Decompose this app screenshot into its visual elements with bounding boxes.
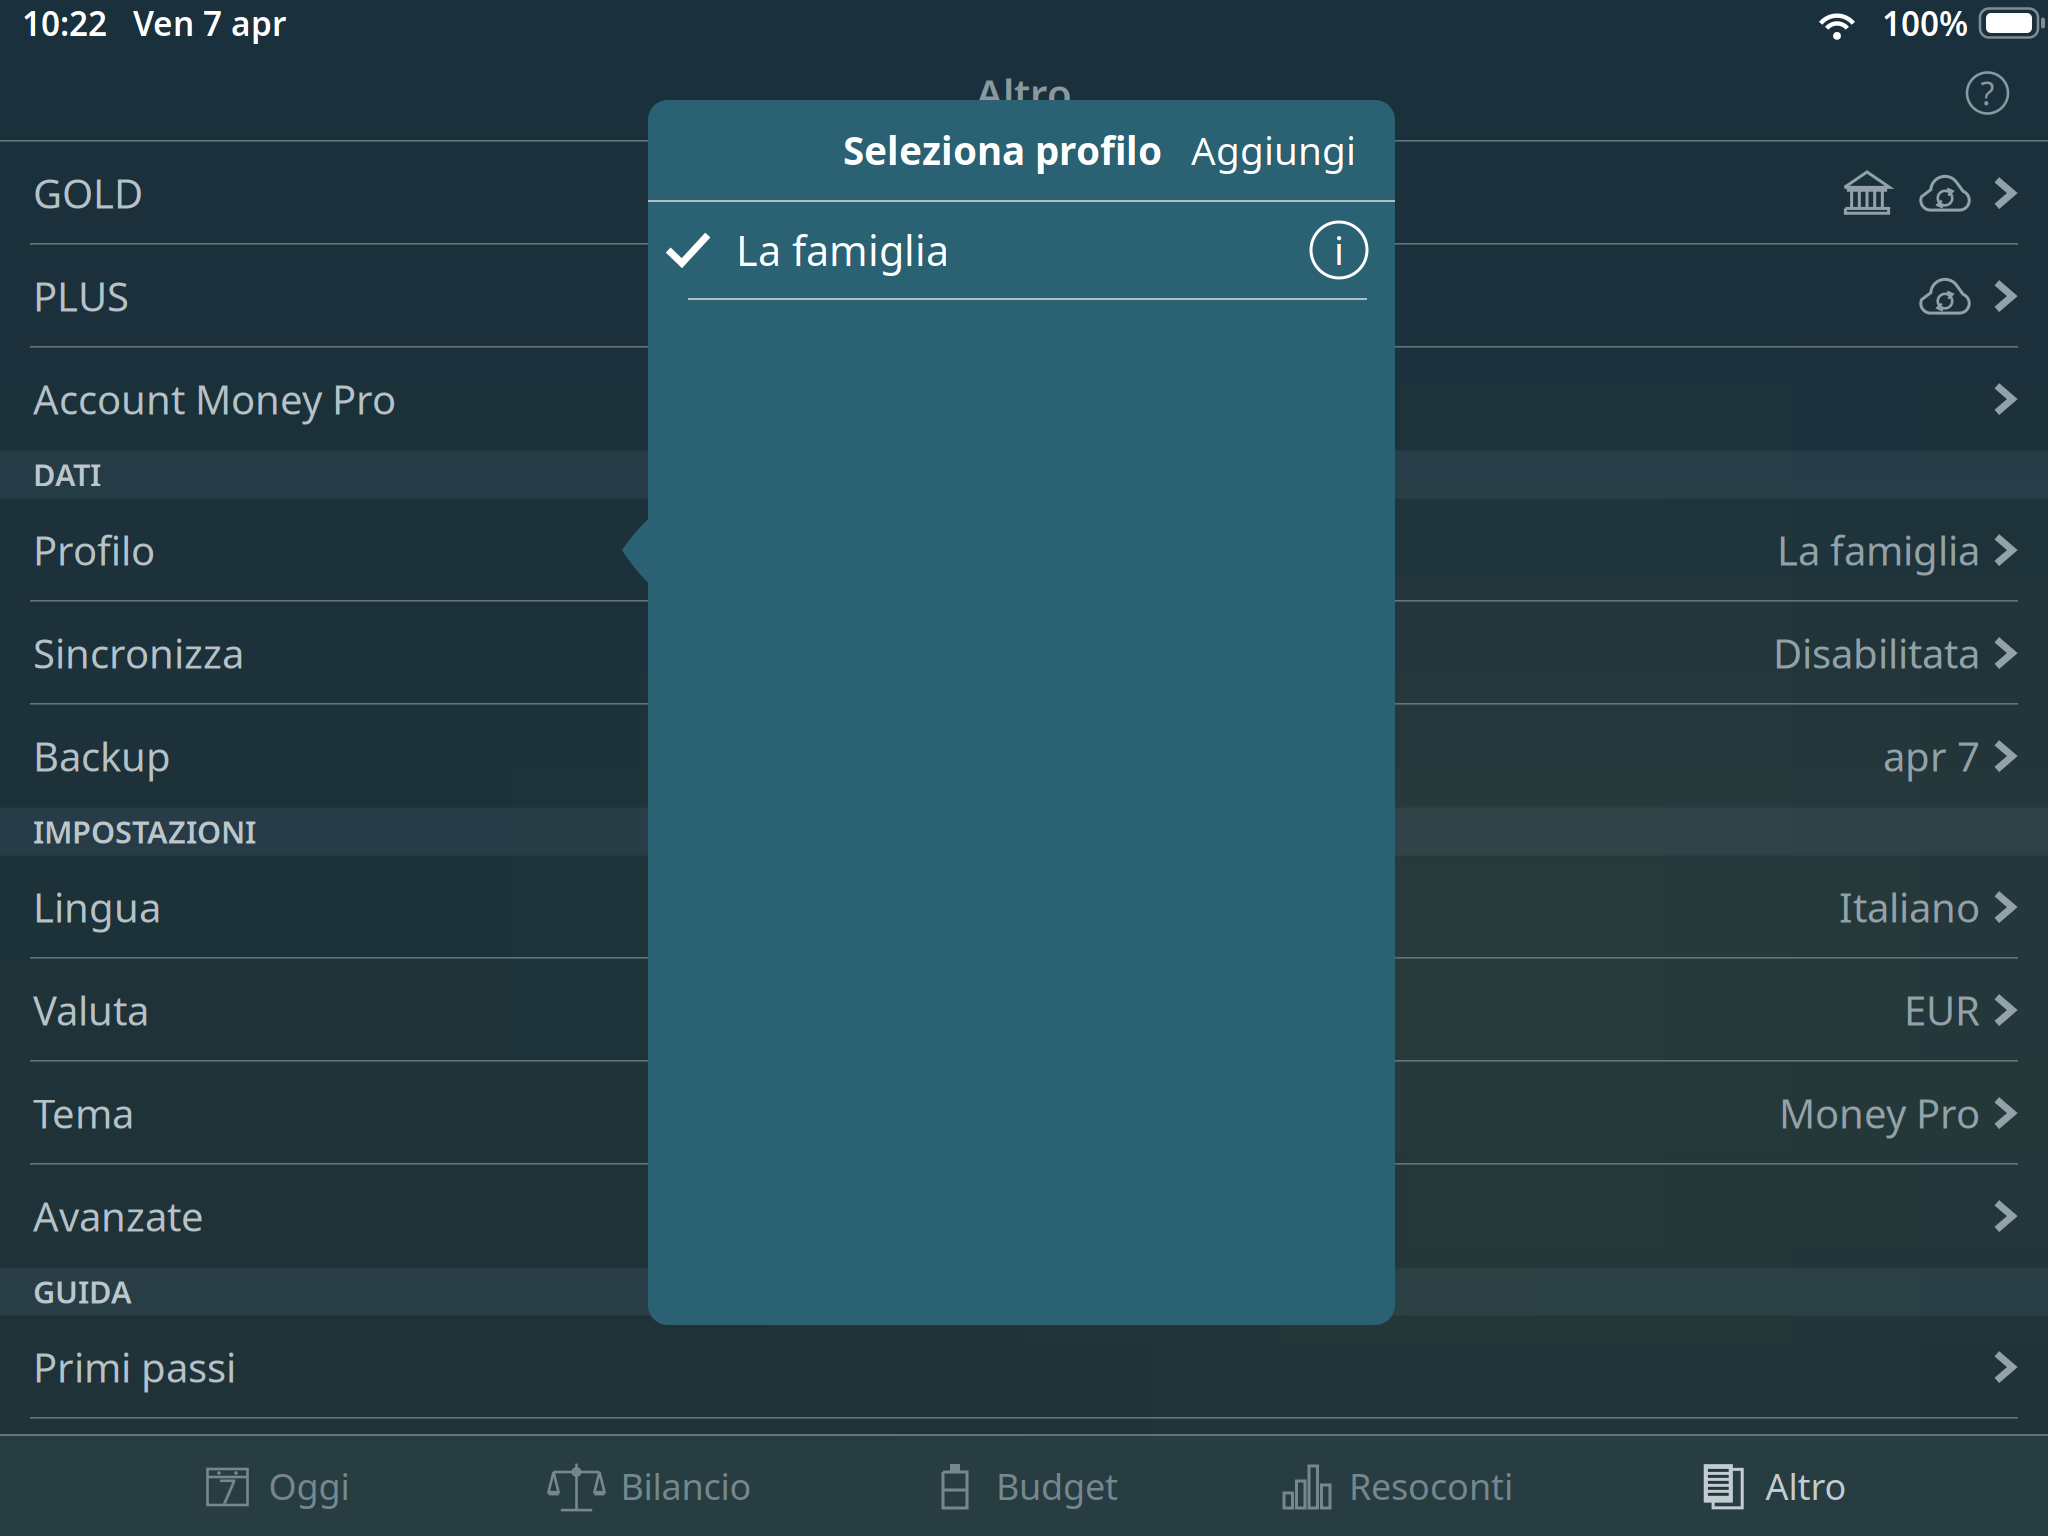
staticText: GOLD — [33, 166, 143, 220]
button[interactable]: Tema — [0, 1062, 2048, 1165]
staticText: PLUS — [33, 269, 129, 323]
staticText: 10:22 — [22, 1, 107, 45]
staticText: Profilo — [33, 523, 155, 577]
button[interactable]: Altro — [1585, 1436, 1959, 1536]
staticText: Avanzate — [33, 1189, 204, 1243]
staticText: Primi passi — [33, 1340, 236, 1394]
button[interactable]: Aiuto — [1967, 72, 2008, 113]
button[interactable]: Backup — [0, 705, 2048, 808]
staticText: Sincronizza — [33, 626, 244, 680]
button[interactable]: Valuta — [0, 959, 2048, 1062]
button[interactable]: GOLD — [0, 142, 2048, 245]
staticText: Backup — [33, 729, 171, 783]
button[interactable]: Sincronizza — [0, 602, 2048, 705]
button[interactable]: 7 — [89, 1436, 463, 1536]
staticText: GUIDA — [33, 1271, 132, 1312]
staticText: IMPOSTAZIONI — [33, 811, 256, 852]
button[interactable]: Avanzate — [0, 1165, 2048, 1268]
staticText: Account Money Pro — [33, 372, 396, 426]
staticText: Bilancio — [620, 1462, 751, 1510]
button[interactable]: PLUS — [0, 245, 2048, 348]
button[interactable]: Bilancio — [463, 1436, 837, 1536]
button[interactable]: Account Money Pro — [0, 348, 2048, 451]
staticText: 100% — [1882, 1, 1968, 45]
staticText: apr 7 — [1883, 729, 1980, 783]
staticText: Money Pro — [1779, 1086, 1980, 1140]
button[interactable]: La famiglia — [648, 202, 1395, 298]
staticText: Italiano — [1839, 880, 1980, 934]
staticText: Resoconti — [1349, 1462, 1513, 1510]
staticText: Seleziona profilo — [843, 124, 1162, 176]
staticText: Budget — [996, 1462, 1118, 1510]
button[interactable]: Budget — [837, 1436, 1211, 1536]
staticText: Ven 7 apr — [133, 1, 286, 45]
button[interactable]: Aggiungi — [1191, 110, 1356, 190]
staticText: Tema — [33, 1086, 134, 1140]
staticText: Valuta — [33, 983, 149, 1037]
staticText: Altro — [1765, 1462, 1846, 1510]
button[interactable]: Dettagli profilo — [1311, 222, 1367, 278]
staticText: Aggiungi — [1191, 124, 1356, 176]
staticText: La famiglia — [1777, 523, 1980, 577]
staticText: Disabilitata — [1773, 626, 1980, 680]
button[interactable]: Profilo — [0, 499, 2048, 602]
staticText: 7 — [218, 1470, 236, 1512]
staticText: ? — [1980, 72, 1994, 114]
staticText: Oggi — [268, 1462, 349, 1510]
staticText: DATI — [33, 454, 101, 495]
button[interactable]: Primi passi — [0, 1316, 2048, 1419]
staticText: i — [1334, 224, 1344, 276]
staticText: Lingua — [33, 880, 161, 934]
button[interactable]: Lingua — [0, 856, 2048, 959]
staticText: Altro — [976, 66, 1072, 119]
button[interactable]: Resoconti — [1211, 1436, 1585, 1536]
staticText: La famiglia — [736, 223, 949, 277]
staticText: EUR — [1904, 983, 1980, 1037]
